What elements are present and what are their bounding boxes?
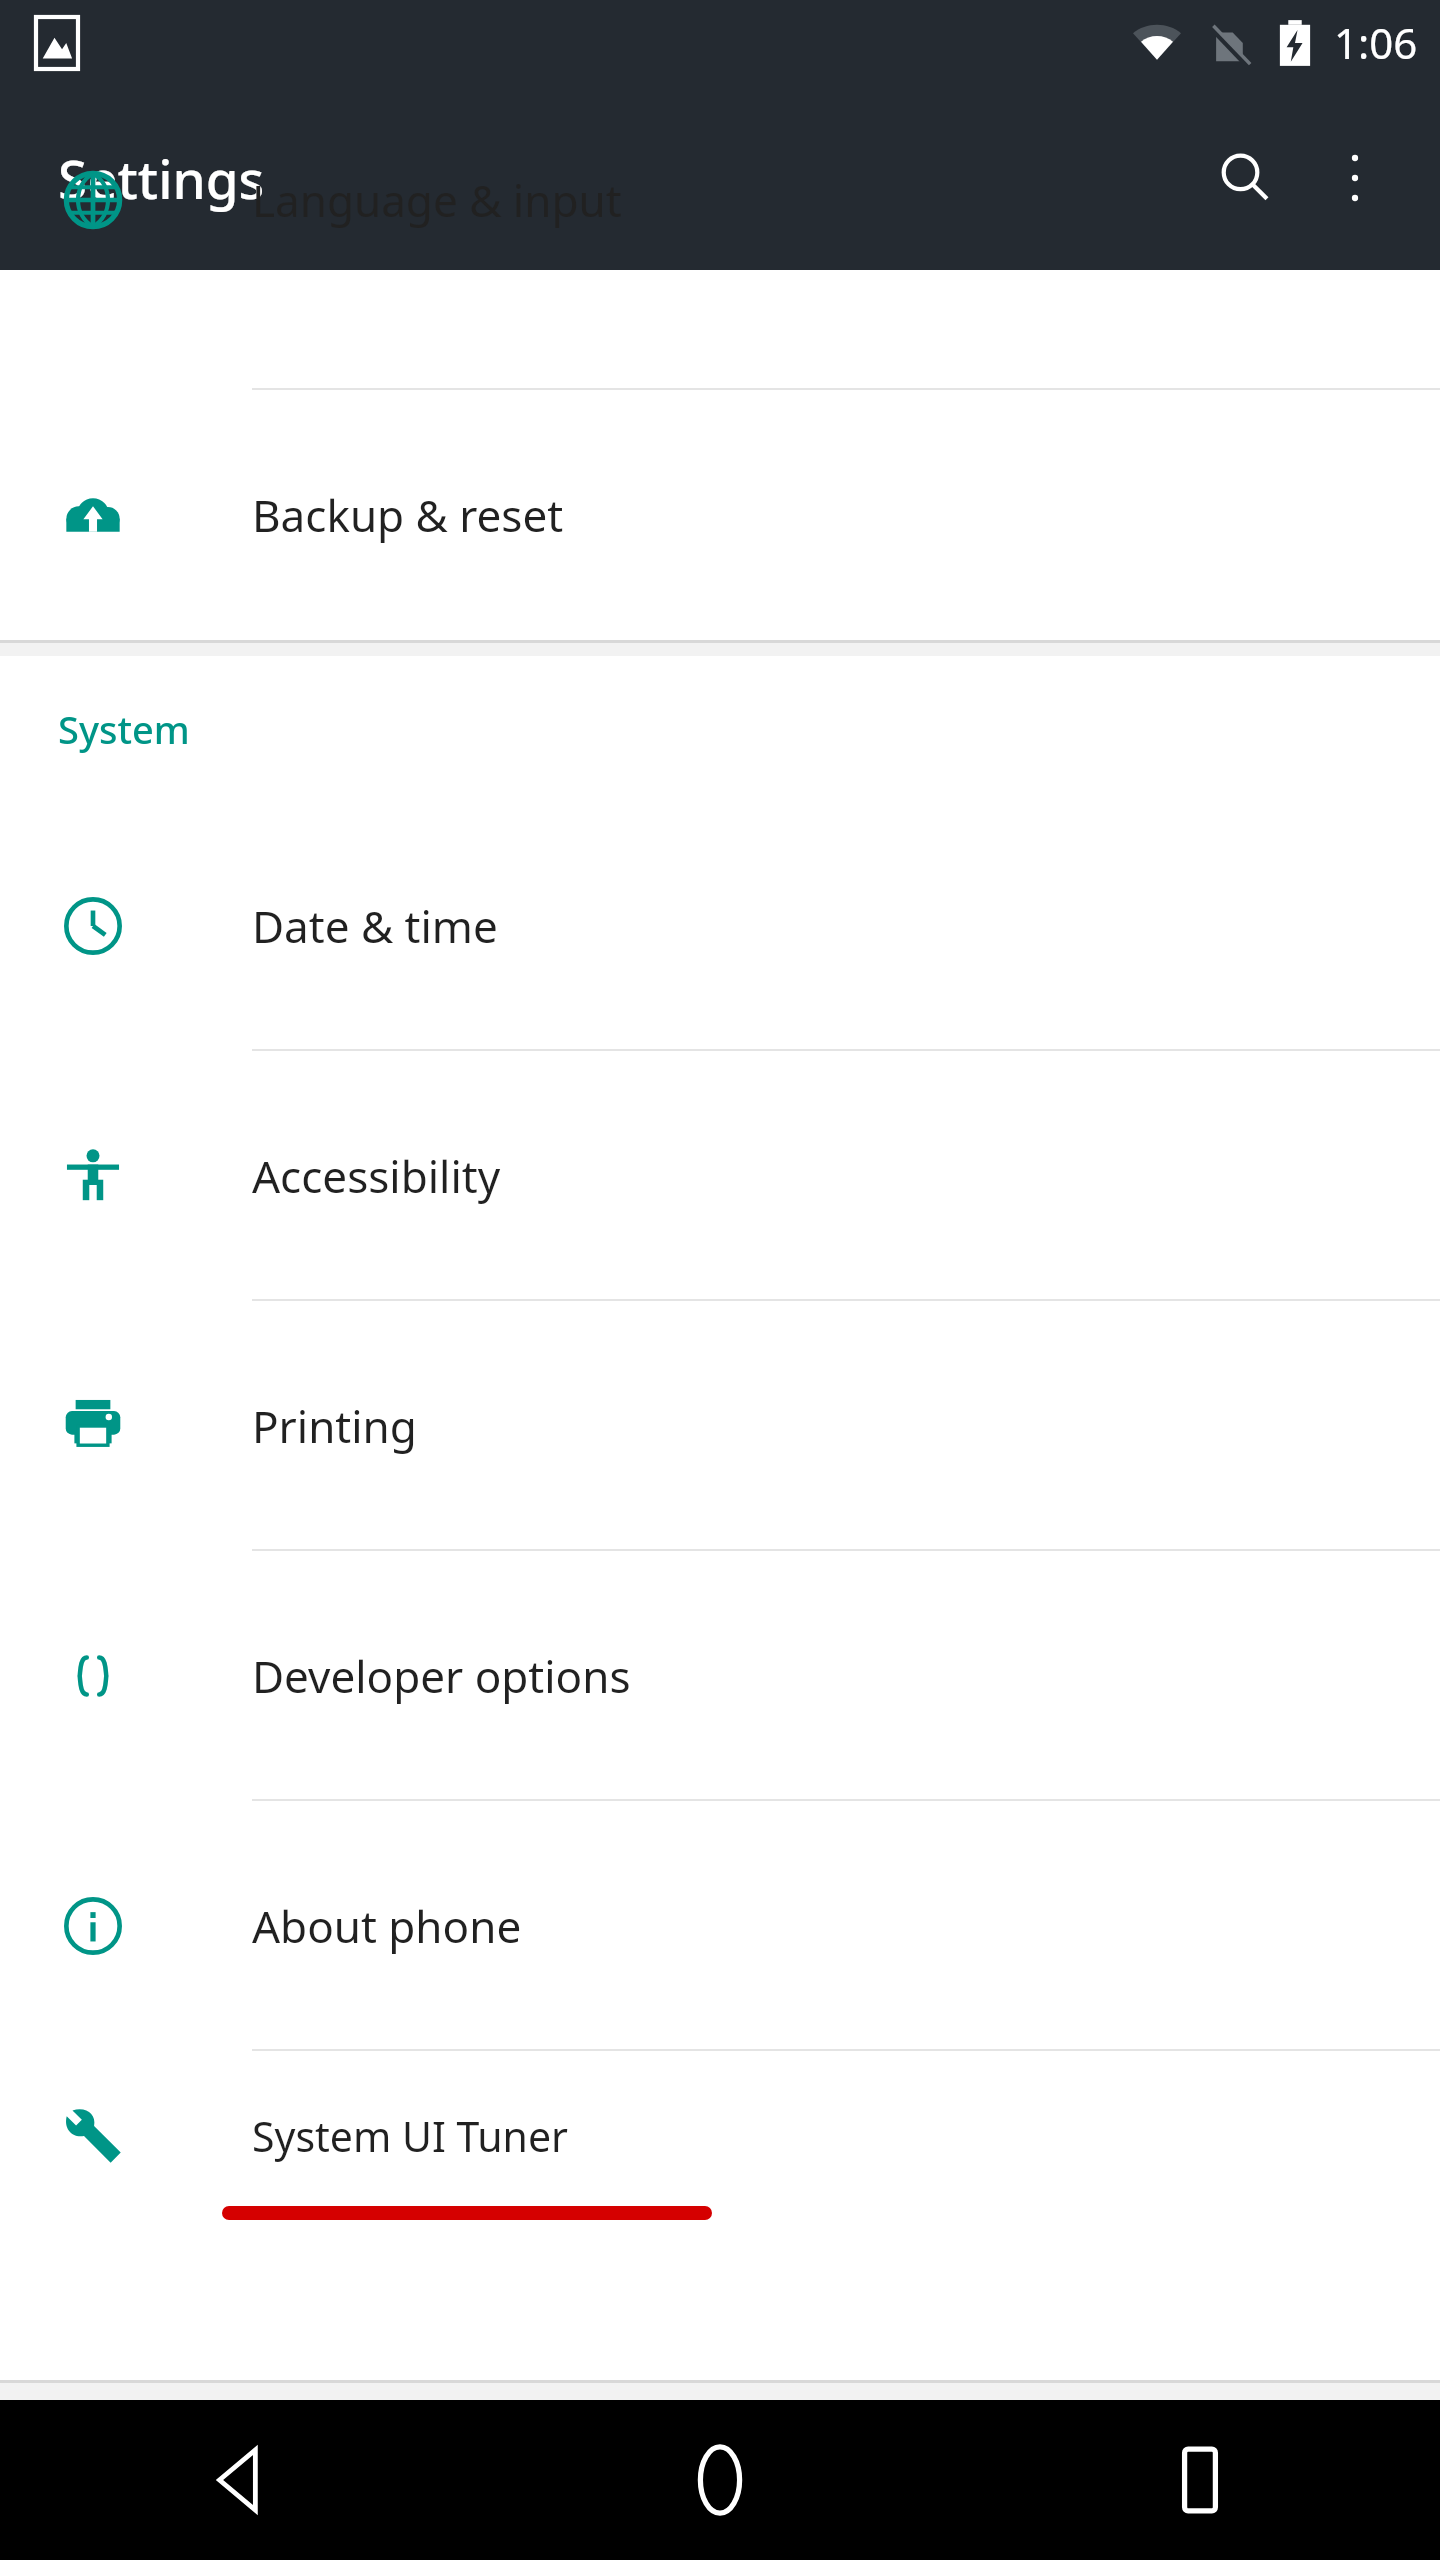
staticText: System UI Tuner [252, 2108, 568, 2164]
button[interactable]: Search [1190, 123, 1300, 233]
staticText: Backup & reset [252, 485, 564, 545]
staticText: Language & input [252, 170, 622, 230]
staticText: Accessibility [252, 1146, 501, 1206]
staticText: System [58, 703, 190, 755]
staticText: Developer options [252, 1646, 631, 1706]
button[interactable]: Accessibility [0, 1051, 1440, 1301]
button[interactable]: More options [1300, 123, 1410, 233]
staticText: Printing [252, 1396, 417, 1456]
staticText: Date & time [252, 896, 498, 956]
button[interactable]: Backup & reset [0, 390, 1440, 640]
button[interactable]: Printing [0, 1301, 1440, 1551]
button[interactable]: Language & input [0, 270, 1440, 390]
button[interactable]: Developer options [0, 1551, 1440, 1801]
button[interactable]: Home [480, 2400, 960, 2560]
button[interactable]: System UI Tuner [0, 2051, 1440, 2251]
button[interactable]: About phone [0, 1801, 1440, 2051]
button[interactable]: Back [0, 2400, 480, 2560]
button[interactable]: Recent apps [960, 2400, 1440, 2560]
staticText: About phone [252, 1896, 522, 1956]
staticText: Settings [58, 142, 265, 214]
staticText: 1:06 [1334, 14, 1418, 71]
button[interactable]: Date & time [0, 801, 1440, 1051]
